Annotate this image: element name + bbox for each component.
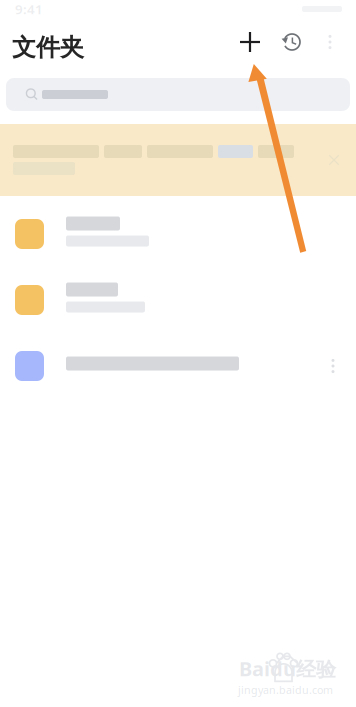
staticText: Baidu经验	[239, 655, 336, 682]
button[interactable]	[0, 333, 356, 399]
button[interactable]	[6, 78, 350, 111]
button[interactable]	[0, 201, 356, 267]
button[interactable]: New folder	[230, 20, 270, 64]
staticText: 文件夹	[12, 33, 84, 62]
button[interactable]	[0, 267, 356, 333]
button[interactable]: Recent	[270, 20, 314, 64]
staticText: 9:41	[15, 0, 43, 18]
staticText: jingyan.baidu.com	[238, 683, 333, 697]
